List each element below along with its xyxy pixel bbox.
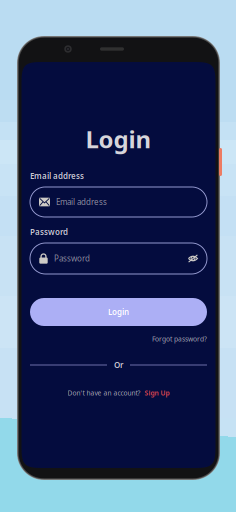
staticText: Email address bbox=[56, 197, 107, 207]
staticText: Forgot password? bbox=[152, 335, 207, 343]
staticText: Or bbox=[114, 360, 123, 370]
staticText: Login bbox=[108, 307, 129, 317]
button[interactable]: Login bbox=[30, 298, 207, 326]
button[interactable]: Sign Up bbox=[144, 389, 169, 397]
button[interactable]: Show password bbox=[188, 254, 198, 263]
staticText: Sign Up bbox=[144, 389, 169, 397]
staticText: Don't have an account? bbox=[67, 389, 140, 397]
staticText: Password bbox=[30, 227, 68, 237]
staticText: Email address bbox=[30, 171, 84, 181]
staticText: Login bbox=[85, 123, 151, 155]
staticText: Password bbox=[54, 253, 90, 264]
button[interactable]: Forgot password? bbox=[152, 335, 207, 343]
